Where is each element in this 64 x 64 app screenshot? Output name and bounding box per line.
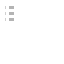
- button[interactable]: [0, 5, 64, 9]
- button[interactable]: [0, 11, 64, 15]
- button[interactable]: [0, 17, 64, 21]
